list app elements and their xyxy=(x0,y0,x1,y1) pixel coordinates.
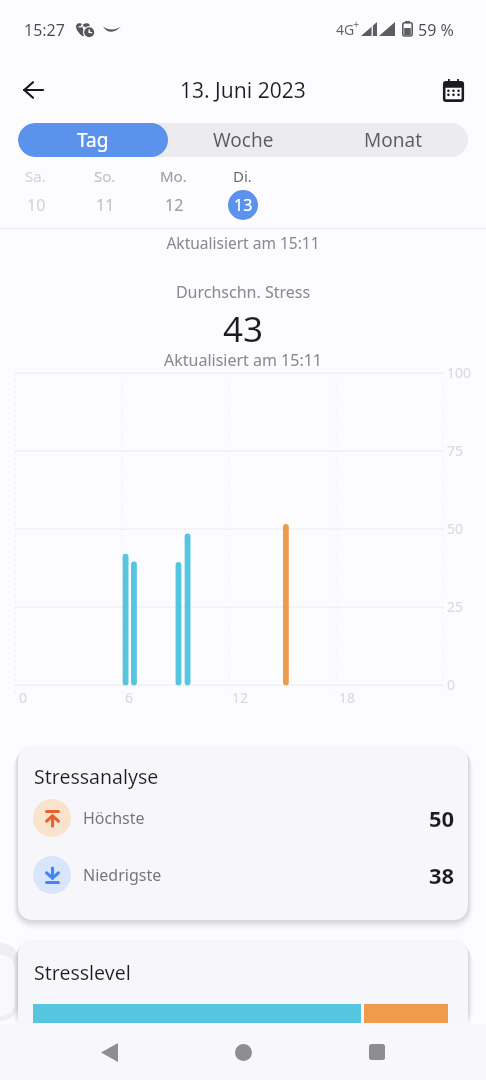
staticText: 10 xyxy=(27,194,46,216)
staticText: 18 xyxy=(339,688,356,707)
staticText: 75 xyxy=(447,441,464,460)
button[interactable]: Recents xyxy=(352,1027,402,1077)
button[interactable]: Höchste xyxy=(33,798,455,837)
staticText: 100 xyxy=(447,363,472,382)
staticText: Durchschn. Stress xyxy=(0,281,486,303)
staticText: Niedrigste xyxy=(83,864,162,886)
staticText: Woche xyxy=(213,127,274,153)
staticText: + xyxy=(353,16,360,31)
button[interactable]: Home xyxy=(218,1027,268,1077)
staticText: 13 xyxy=(234,194,253,216)
staticText: 11 xyxy=(96,194,115,216)
staticText: Tag xyxy=(77,127,109,153)
button[interactable]: Tag xyxy=(18,123,168,157)
button[interactable]: Sa. xyxy=(1,166,70,220)
staticText: 59 % xyxy=(418,19,454,41)
staticText: 0 xyxy=(19,688,28,707)
staticText: So. xyxy=(94,166,116,186)
staticText: 25 xyxy=(447,597,464,616)
staticText: 13. Juni 2023 xyxy=(180,76,306,105)
staticText: Di. xyxy=(233,166,252,186)
staticText: Mo. xyxy=(160,166,187,186)
staticText: Aktualisiert am 15:11 xyxy=(0,232,486,253)
staticText: Aktualisiert am 15:11 xyxy=(0,349,486,371)
button[interactable]: So. xyxy=(70,166,139,220)
staticText: 6 xyxy=(125,688,134,707)
staticText: 0 xyxy=(447,675,456,694)
staticText: 50 xyxy=(447,519,464,538)
staticText: Stressanalyse xyxy=(34,763,159,790)
staticText: 38 xyxy=(429,860,455,890)
staticText: 43 xyxy=(0,305,486,353)
staticText: Sa. xyxy=(25,166,46,186)
button[interactable]: Monat xyxy=(318,123,468,157)
button[interactable]: Mo. xyxy=(139,166,208,220)
staticText: Stresslevel xyxy=(34,959,131,986)
staticText: Monat xyxy=(364,127,422,153)
button[interactable]: Back xyxy=(84,1027,134,1077)
button[interactable]: Calendar xyxy=(432,69,474,111)
button[interactable]: Di. xyxy=(208,166,277,220)
staticText: 15:27 xyxy=(24,19,65,41)
staticText: 12 xyxy=(232,688,249,707)
button[interactable]: Woche xyxy=(168,123,318,157)
staticText: 12 xyxy=(165,194,184,216)
button[interactable]: Niedrigste xyxy=(33,855,455,894)
staticText: Höchste xyxy=(83,807,145,829)
staticText: 4G xyxy=(336,20,355,39)
button[interactable]: Back xyxy=(13,70,53,110)
staticText: 50 xyxy=(429,803,455,833)
